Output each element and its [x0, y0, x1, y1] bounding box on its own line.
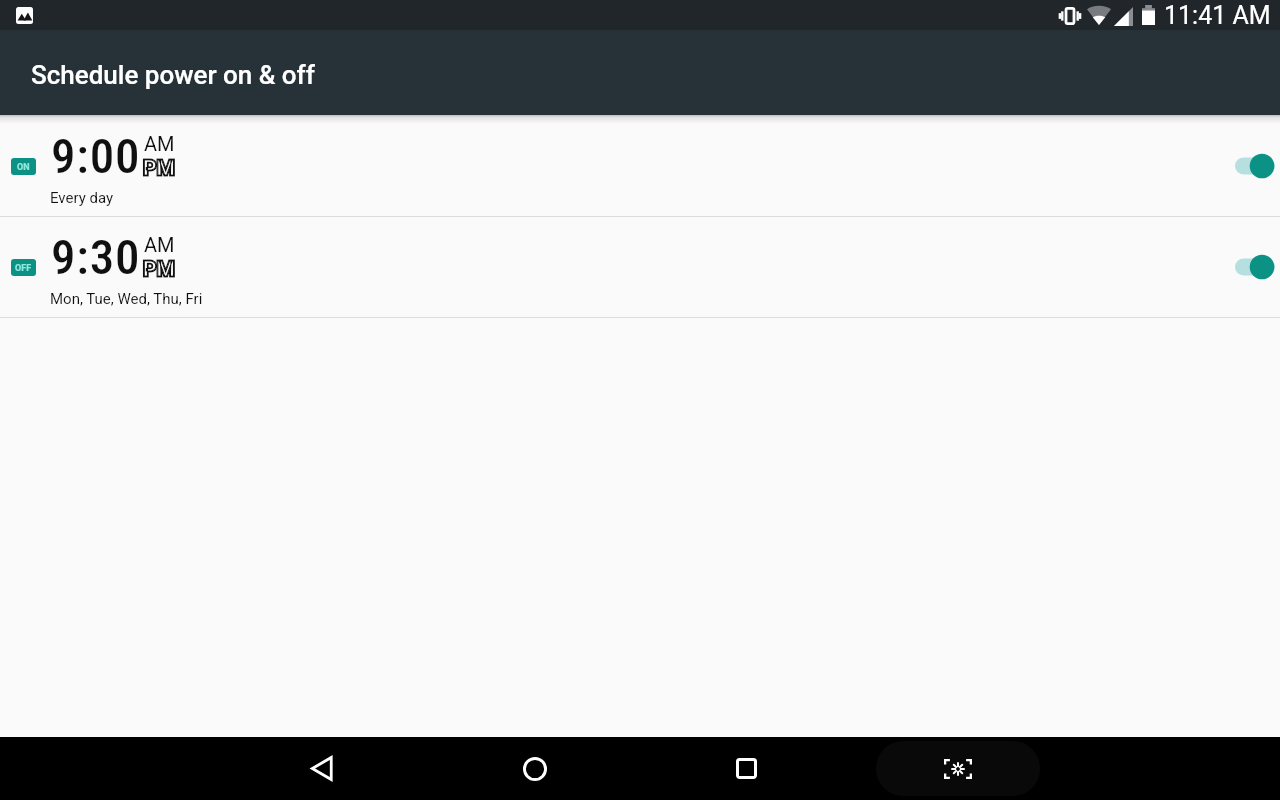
staticText: PM	[143, 257, 175, 282]
button[interactable]: Home	[495, 737, 575, 800]
staticText: PM	[143, 156, 175, 181]
staticText: 9:30	[51, 229, 141, 286]
staticText: Mon, Tue, Wed, Thu, Fri	[50, 290, 203, 308]
staticText: PM	[143, 156, 175, 181]
staticText: PM	[143, 257, 175, 282]
staticText: PM	[143, 156, 175, 181]
staticText: ON	[17, 162, 30, 173]
staticText: AM	[144, 233, 175, 256]
button[interactable]: OFF	[0, 217, 1280, 317]
button[interactable]: Recent apps	[706, 737, 786, 800]
staticText: Schedule power on & off	[31, 60, 315, 90]
staticText: 9:00	[51, 128, 141, 185]
button[interactable]: Screenshot	[876, 741, 1040, 796]
button[interactable]: ON	[0, 116, 1280, 216]
staticText: Every day	[50, 189, 114, 207]
staticText: OFF	[15, 263, 32, 274]
button[interactable]: Turn off schedule	[1228, 142, 1280, 190]
staticText: PM	[143, 257, 175, 282]
staticText: 11:41 AM	[1164, 1, 1271, 30]
button[interactable]: Turn on schedule	[1228, 243, 1280, 291]
staticText: AM	[144, 132, 175, 155]
button[interactable]: Back	[282, 737, 362, 800]
